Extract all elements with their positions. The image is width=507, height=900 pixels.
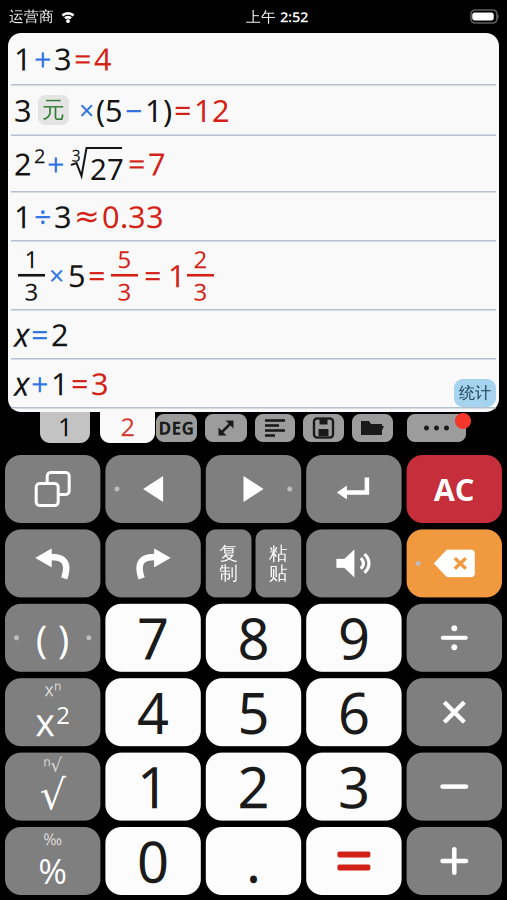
staticText: . xyxy=(246,824,261,898)
staticText: x xyxy=(35,697,55,746)
staticText: 5 xyxy=(117,243,131,275)
staticText: % xyxy=(38,848,67,894)
staticText: 3 xyxy=(14,90,32,130)
staticText: ≈ xyxy=(74,199,100,234)
staticText: 6 xyxy=(338,675,370,749)
button[interactable]: 右移 xyxy=(206,455,301,523)
button[interactable]: 等于 xyxy=(306,827,402,895)
staticText: − xyxy=(125,90,143,130)
staticText: x xyxy=(14,313,29,355)
staticText: 0 xyxy=(137,824,169,898)
staticText: 复 xyxy=(219,542,238,565)
staticText: DEG xyxy=(158,416,194,439)
button[interactable]: 5 xyxy=(206,678,301,746)
button[interactable]: 2 xyxy=(206,753,301,821)
staticText: 1 xyxy=(51,363,69,404)
staticText: 2 xyxy=(51,314,69,355)
button[interactable]: 减 xyxy=(407,753,502,821)
button[interactable]: 3 xyxy=(306,753,402,821)
staticText: 1 xyxy=(168,255,186,296)
staticText: = xyxy=(71,363,89,404)
button[interactable]: 0 xyxy=(105,827,201,895)
button[interactable]: 加 xyxy=(407,827,502,895)
button[interactable]: 乘 xyxy=(407,678,502,746)
staticText: 1) xyxy=(145,90,172,130)
staticText: 4 xyxy=(137,675,169,749)
button[interactable]: 统计 xyxy=(454,379,496,407)
staticText: n xyxy=(43,754,50,770)
button[interactable]: 撤销 xyxy=(5,529,100,597)
button[interactable]: 历史记录 xyxy=(255,414,295,442)
button[interactable]: 左移 xyxy=(105,455,201,523)
staticText: 7 xyxy=(137,601,169,675)
button[interactable]: . xyxy=(206,827,301,895)
button[interactable]: 打开 xyxy=(352,414,393,442)
staticText: = xyxy=(31,314,49,355)
staticText: 3 xyxy=(193,276,207,307)
button[interactable]: 保存 xyxy=(303,414,344,442)
staticText: 1 xyxy=(24,243,38,275)
staticText: + xyxy=(34,38,52,79)
staticText: 7 xyxy=(148,143,166,184)
staticText: 粘 xyxy=(269,542,288,565)
staticText: 3 xyxy=(338,749,370,824)
button[interactable]: 开方 xyxy=(5,753,100,821)
button[interactable]: 多选 xyxy=(5,455,100,523)
button[interactable]: 平方 xyxy=(5,678,100,746)
button[interactable]: 朗读 xyxy=(306,529,402,597)
button[interactable]: 更多 xyxy=(407,414,466,442)
staticText: 3 xyxy=(54,38,72,79)
button[interactable]: 9 xyxy=(306,604,402,672)
button[interactable]: 7 xyxy=(105,604,201,672)
staticText: 8 xyxy=(237,601,269,675)
staticText: 2 xyxy=(120,410,134,443)
button[interactable]: 1 xyxy=(105,753,201,821)
button[interactable]: 百分号 xyxy=(5,827,100,895)
button[interactable]: 粘 xyxy=(255,529,301,597)
staticText: n xyxy=(54,678,61,694)
button[interactable]: 括号 xyxy=(5,604,100,672)
button[interactable]: 6 xyxy=(306,678,402,746)
staticText: = xyxy=(144,255,162,296)
button[interactable]: 退格 xyxy=(407,529,502,597)
button[interactable]: DEG xyxy=(156,414,197,442)
staticText: ( ) xyxy=(36,612,70,663)
button[interactable]: 重做 xyxy=(105,529,201,597)
staticText: 0.33 xyxy=(102,196,164,237)
staticText: × xyxy=(49,257,64,293)
staticText: 12 xyxy=(194,90,230,130)
staticText: x xyxy=(14,362,29,404)
staticText: × xyxy=(79,92,94,128)
staticText: ÷ xyxy=(34,196,52,237)
staticText: 27 xyxy=(90,149,124,188)
staticText: 2 xyxy=(193,243,207,275)
button[interactable]: 4 xyxy=(105,678,201,746)
staticText: 1 xyxy=(137,749,169,824)
button[interactable]: 8 xyxy=(206,604,301,672)
button[interactable]: 全屏 xyxy=(205,414,247,442)
staticText: ‰ xyxy=(43,828,62,850)
button[interactable]: 1 xyxy=(40,412,90,443)
staticText: 2 xyxy=(34,142,45,169)
staticText: 上午 2:52 xyxy=(246,7,308,26)
staticText: = xyxy=(74,38,92,79)
staticText: + xyxy=(47,143,65,184)
staticText: = xyxy=(174,90,192,130)
staticText: 5 xyxy=(237,675,269,749)
staticText: 1 xyxy=(58,410,72,443)
staticText: 运营商 xyxy=(9,7,54,25)
staticText: 3 xyxy=(91,363,109,404)
staticText: 2 xyxy=(237,749,269,824)
button[interactable]: 换行 xyxy=(306,455,402,523)
staticText: (5 xyxy=(96,90,123,130)
button[interactable]: AC xyxy=(407,455,502,523)
staticText: = xyxy=(88,255,106,296)
button[interactable]: 除 xyxy=(407,604,502,672)
button[interactable]: 复 xyxy=(206,529,251,597)
staticText: √ xyxy=(40,772,66,819)
staticText: 贴 xyxy=(269,562,288,585)
button[interactable]: 2 xyxy=(100,412,155,443)
staticText: 1 xyxy=(14,38,32,79)
staticText: 9 xyxy=(338,601,370,675)
staticText: √ xyxy=(50,755,62,776)
